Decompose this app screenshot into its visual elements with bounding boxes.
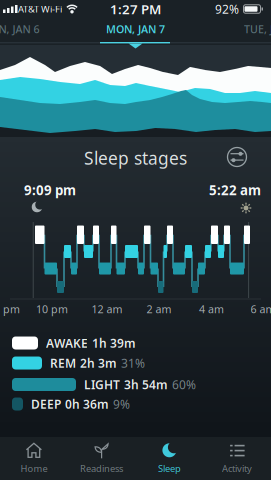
staticText: 3h 54m — [124, 376, 168, 392]
staticText: N, JAN 6 — [0, 22, 39, 36]
staticText: 60% — [172, 376, 196, 392]
staticText: 9:09 pm — [24, 181, 76, 199]
staticText: 2h 3m — [80, 355, 117, 371]
button[interactable]: Chart options — [226, 146, 248, 168]
staticText: 31% — [121, 355, 145, 371]
staticText: 92% — [215, 1, 239, 17]
staticText: 1h 39m — [92, 335, 136, 351]
button[interactable]: N, JAN 6 — [0, 22, 49, 36]
staticText: 6 am — [250, 302, 271, 316]
staticText: Readiness — [80, 462, 123, 475]
staticText: 5:22 am — [209, 181, 261, 199]
staticText: 4 am — [199, 302, 224, 316]
staticText: AWAKE — [46, 335, 88, 351]
staticText: Sleep — [158, 462, 181, 475]
staticText: TUE, JA — [244, 22, 271, 36]
staticText: 1:27 PM — [110, 0, 161, 18]
button[interactable]: TUE, JA — [232, 22, 271, 36]
staticText: LIGHT — [84, 376, 120, 392]
button[interactable]: MON, JAN 7 — [95, 22, 175, 36]
staticText: 0h 36m — [65, 396, 109, 412]
staticText: DEEP — [31, 396, 61, 412]
button[interactable]: Activity — [205, 437, 269, 479]
staticText: Sleep stages — [84, 146, 187, 169]
staticText: AT&T Wi-Fi — [18, 3, 62, 15]
button[interactable]: Sleep — [137, 437, 201, 479]
button[interactable]: Readiness — [70, 437, 134, 479]
button[interactable]: Home — [2, 437, 66, 479]
staticText: Home — [20, 462, 47, 475]
staticText: 12 am — [91, 302, 122, 316]
staticText: 10 pm — [36, 302, 68, 316]
staticText: MON, JAN 7 — [106, 22, 165, 36]
staticText: 9% — [113, 396, 130, 412]
staticText: 8 pm — [0, 302, 20, 316]
staticText: REM — [50, 355, 76, 371]
staticText: 2 am — [146, 302, 171, 316]
staticText: Activity — [222, 462, 252, 475]
